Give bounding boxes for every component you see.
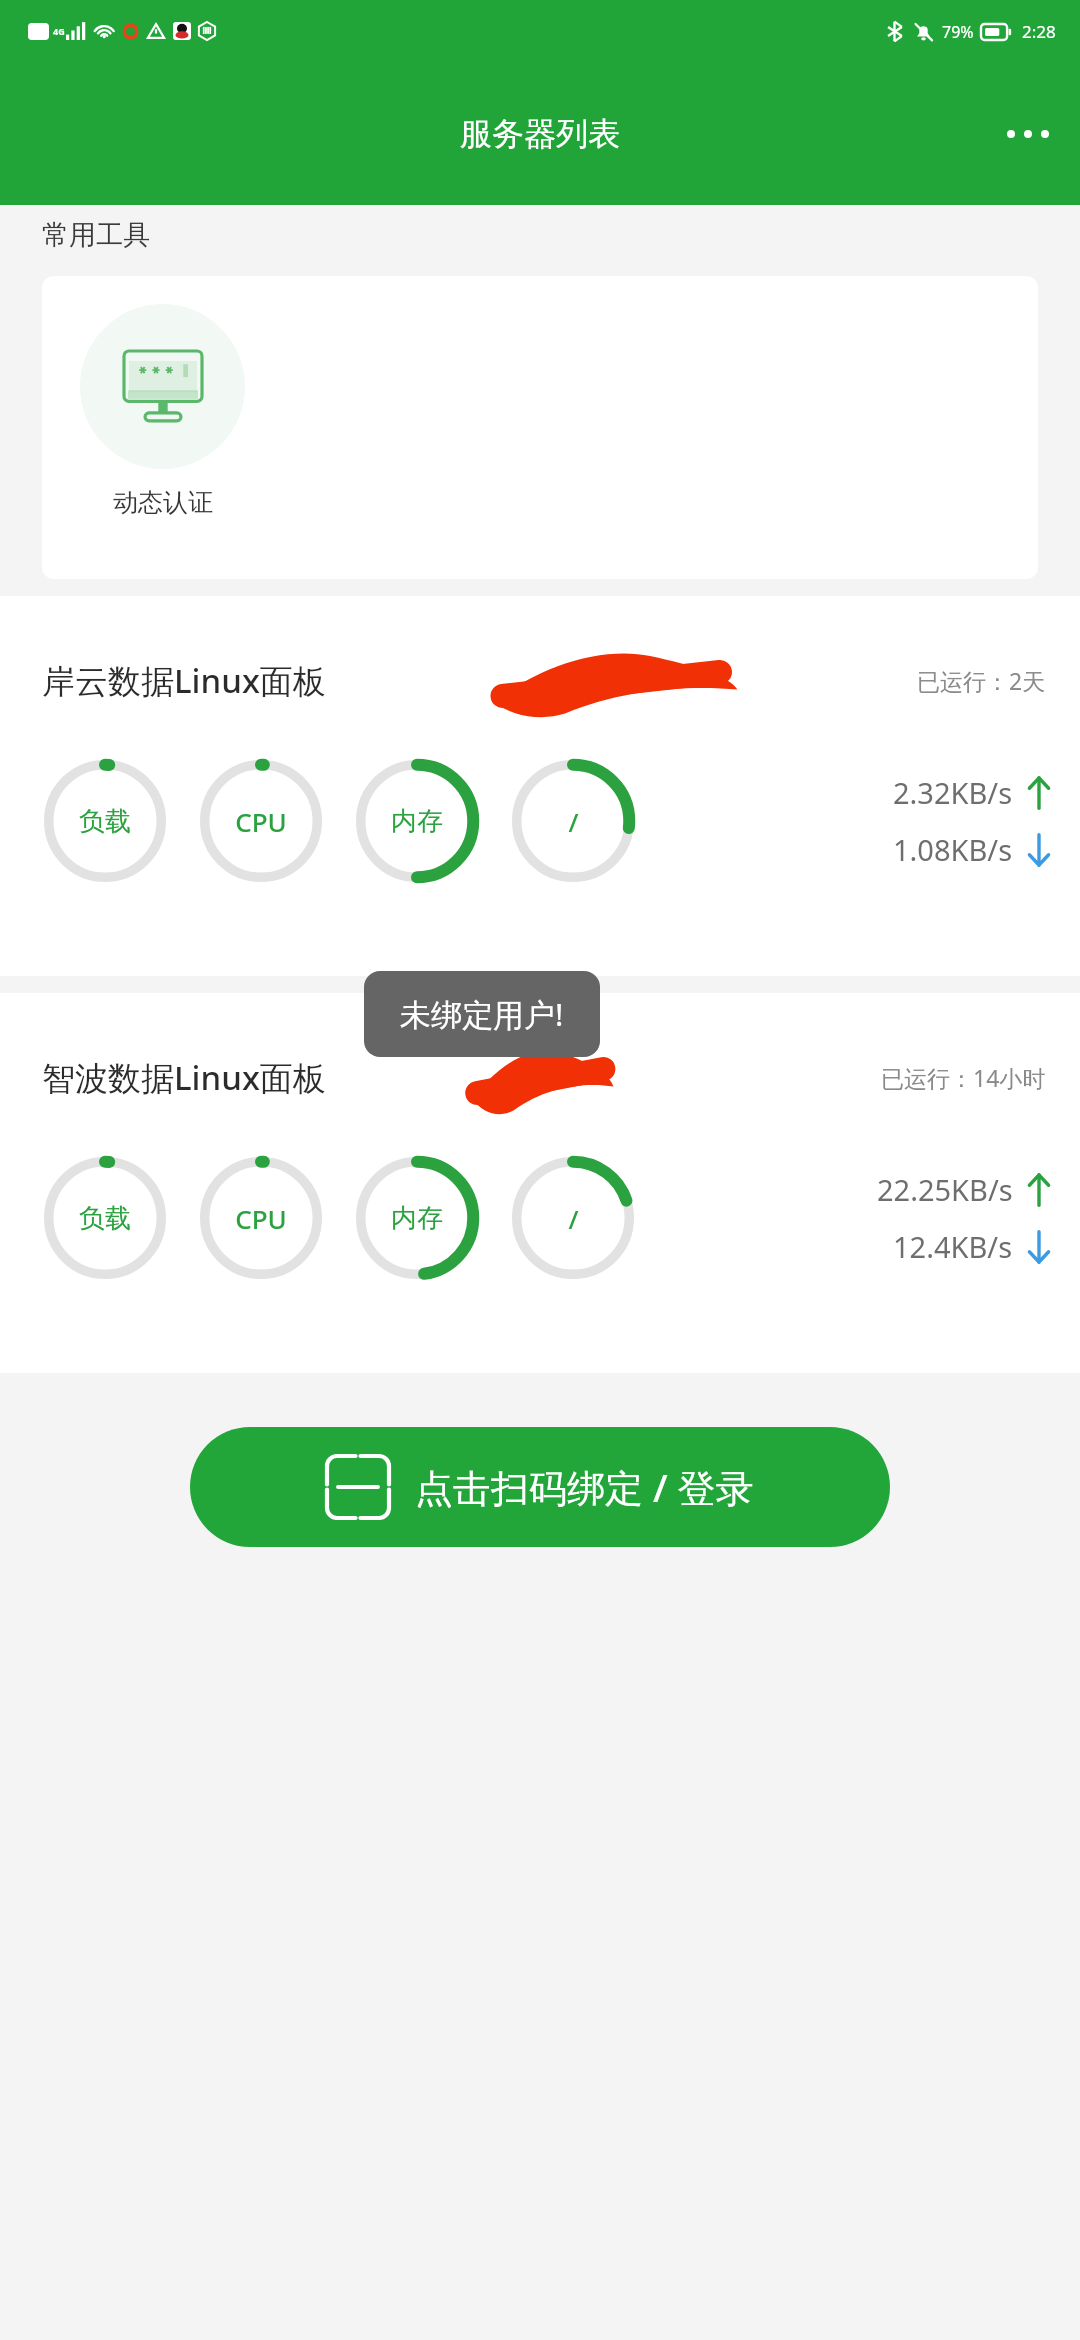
staticText: 负载	[79, 805, 131, 838]
staticText: 智波数据Linux面板	[42, 1055, 326, 1100]
staticText: 2:28	[1022, 20, 1056, 43]
button[interactable]: 智波数据Linux面板	[0, 993, 1080, 1373]
staticText: CPU	[235, 804, 287, 839]
staticText: 服务器列表	[460, 114, 620, 154]
staticText: 已运行：2天	[917, 665, 1046, 696]
button[interactable]: 岸云数据Linux面板	[0, 596, 1080, 976]
staticText: 动态认证	[113, 487, 213, 518]
button[interactable]: 动态认证	[80, 304, 245, 518]
staticText: 内存	[391, 1202, 443, 1235]
staticText: /	[568, 1201, 579, 1236]
staticText: 2.32KB/s	[893, 773, 1013, 812]
staticText: 常用工具	[42, 218, 150, 252]
staticText: /	[568, 804, 579, 839]
staticText: 79%	[942, 21, 974, 43]
staticText: 点击扫码绑定 / 登录	[415, 1461, 754, 1513]
staticText: 已运行：14小时	[881, 1062, 1046, 1093]
staticText: 12.4KB/s	[893, 1227, 1013, 1266]
button[interactable]: More options	[988, 94, 1068, 174]
staticText: 内存	[391, 805, 443, 838]
staticText: 22.25KB/s	[877, 1170, 1013, 1209]
staticText: CPU	[235, 1201, 287, 1236]
staticText: 岸云数据Linux面板	[42, 658, 326, 703]
staticText: 未绑定用户!	[400, 993, 564, 1035]
staticText: 1.08KB/s	[893, 830, 1013, 869]
staticText: 负载	[79, 1202, 131, 1235]
button[interactable]: 点击扫码绑定 / 登录	[190, 1427, 890, 1547]
staticText: 4G	[53, 25, 65, 37]
